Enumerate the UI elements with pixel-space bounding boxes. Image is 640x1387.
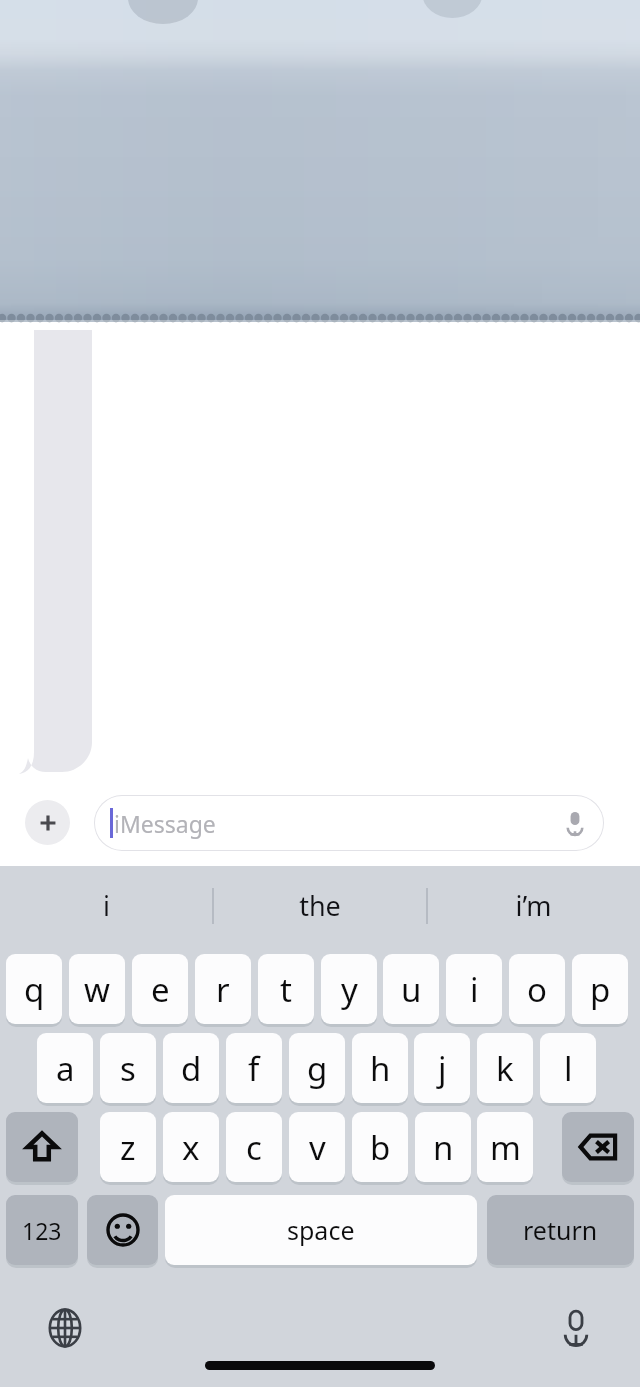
button[interactable]: space [165,1195,477,1265]
staticText: p [590,967,611,1012]
staticText: c [246,1125,262,1170]
staticText: r [216,967,230,1012]
button[interactable]: m [477,1112,533,1182]
button[interactable]: iMessage [94,795,604,851]
staticText: e [151,967,170,1012]
button[interactable]: l [540,1033,596,1103]
button[interactable]: e [132,954,188,1024]
staticText: i’m [515,887,552,924]
button[interactable]: d [163,1033,219,1103]
button[interactable]: t [258,954,314,1024]
staticText: u [401,967,422,1012]
staticText: y [341,967,358,1012]
button[interactable]: Backspace [562,1112,634,1182]
button[interactable]: the [213,866,426,944]
staticText: w [84,967,110,1012]
button[interactable]: q [6,954,62,1024]
button[interactable]: i [0,866,213,944]
staticText: f [248,1046,260,1091]
button[interactable]: Add attachment [25,800,70,845]
staticText: a [56,1046,75,1091]
button[interactable]: a [37,1033,93,1103]
button[interactable]: y [321,954,377,1024]
staticText: g [307,1046,328,1091]
staticText: return [523,1213,598,1247]
button[interactable]: k [477,1033,533,1103]
staticText: i [103,887,110,924]
button[interactable]: f [226,1033,282,1103]
staticText: n [433,1125,454,1170]
button[interactable]: i [446,954,502,1024]
button[interactable]: i’m [427,866,640,944]
button[interactable]: n [415,1112,471,1182]
button[interactable]: Shift [6,1112,78,1182]
button[interactable]: return [487,1195,634,1265]
button[interactable]: p [572,954,628,1024]
button[interactable]: 123 [6,1195,78,1265]
staticText: h [370,1046,391,1091]
button[interactable]: u [383,954,439,1024]
staticText: b [370,1125,391,1170]
staticText: k [496,1046,514,1091]
staticText: iMessage [114,808,216,839]
staticText: j [438,1046,447,1091]
button[interactable]: j [414,1033,470,1103]
staticText: d [181,1046,202,1091]
button[interactable]: Dictate [560,808,590,838]
staticText: q [24,967,45,1012]
staticText: l [564,1046,573,1091]
button[interactable]: h [352,1033,408,1103]
staticText: i [470,967,479,1012]
button[interactable]: Dictation [551,1303,601,1353]
button[interactable]: c [226,1112,282,1182]
button[interactable]: w [69,954,125,1024]
staticText: x [182,1125,200,1170]
staticText: s [120,1046,136,1091]
staticText: 123 [22,1215,62,1246]
button[interactable]: g [289,1033,345,1103]
button[interactable]: Emoji [87,1195,158,1265]
button[interactable] [26,330,92,772]
button[interactable]: v [289,1112,345,1182]
staticText: m [490,1125,521,1170]
button[interactable]: o [509,954,565,1024]
staticText: v [309,1125,326,1170]
button[interactable]: s [100,1033,156,1103]
staticText: z [120,1125,136,1170]
button[interactable]: z [100,1112,156,1182]
staticText: the [299,887,341,924]
staticText: space [287,1213,355,1247]
staticText: o [527,967,547,1012]
button[interactable]: x [163,1112,219,1182]
button[interactable]: Switch keyboard [40,1303,90,1353]
button[interactable]: r [195,954,251,1024]
staticText: t [280,967,292,1012]
button[interactable]: b [352,1112,408,1182]
